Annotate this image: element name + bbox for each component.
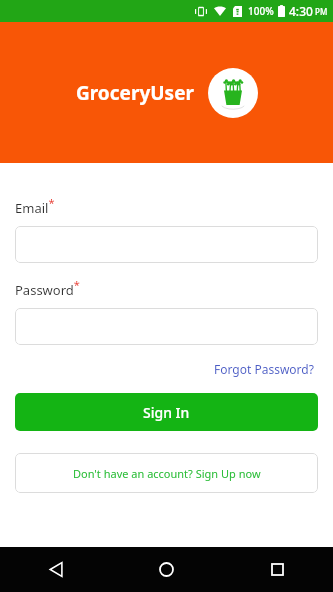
staticText: GroceryUser: [76, 80, 194, 106]
button[interactable]: [15, 226, 318, 263]
button[interactable]: Recent apps: [222, 547, 333, 592]
staticText: Don't have an account? Sign Up now: [73, 466, 261, 481]
staticText: Email*: [15, 195, 55, 216]
button[interactable]: Home: [111, 547, 222, 592]
button[interactable]: Forgot Password?: [210, 359, 318, 379]
staticText: PM: [315, 6, 328, 17]
button[interactable]: Back: [0, 547, 111, 592]
staticText: Password*: [15, 277, 80, 298]
staticText: Forgot Password?: [214, 361, 314, 377]
button[interactable]: Don't have an account? Sign Up now: [15, 453, 318, 493]
button[interactable]: [15, 308, 318, 345]
button[interactable]: Sign In: [15, 393, 318, 431]
staticText: 4:30: [289, 3, 313, 19]
staticText: Sign In: [143, 403, 190, 422]
staticText: 100%: [248, 4, 274, 18]
